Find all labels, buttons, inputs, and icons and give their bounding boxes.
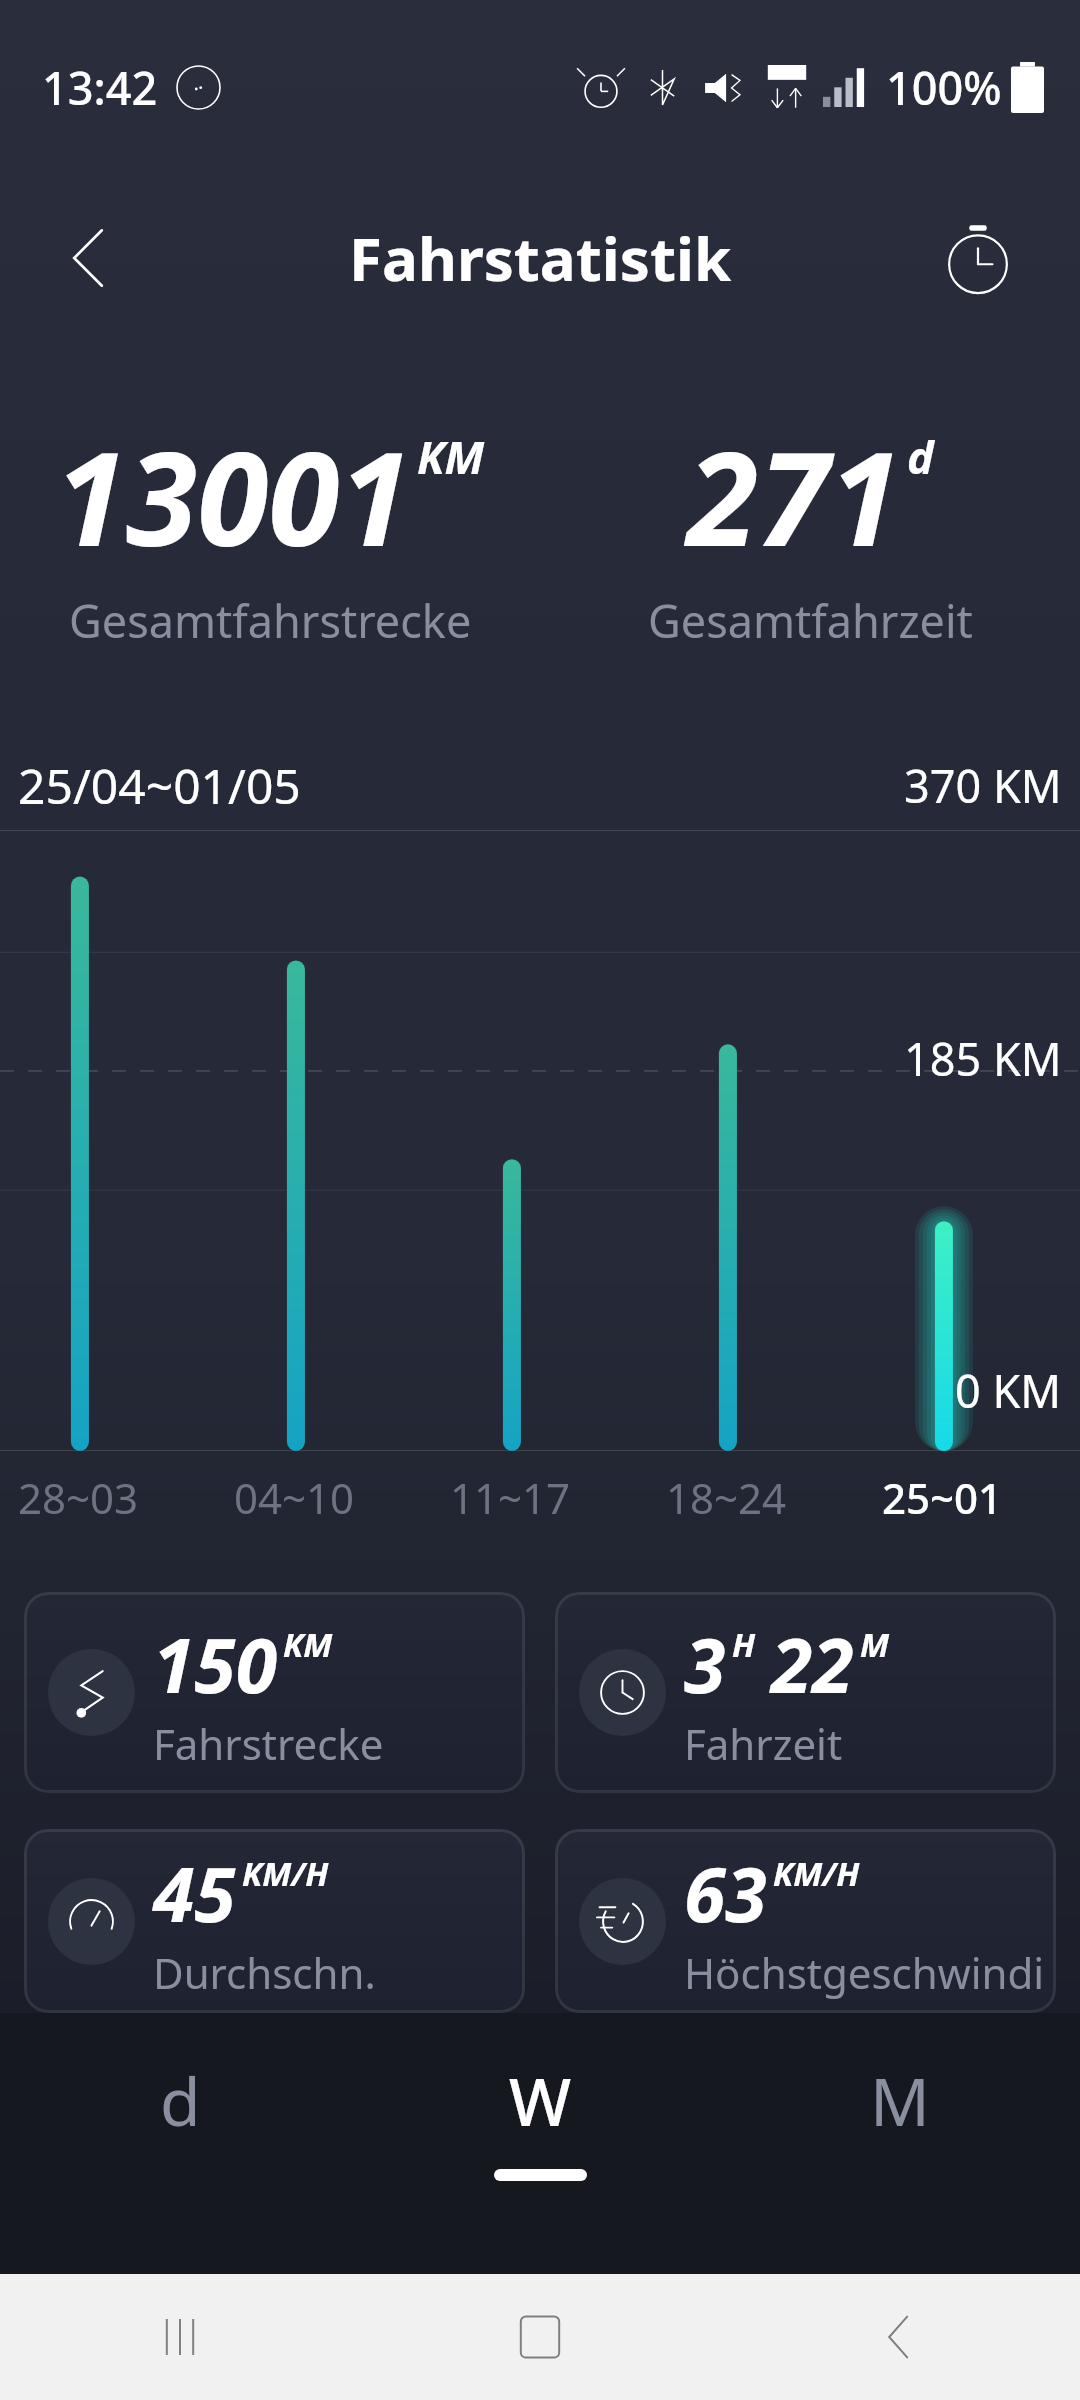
staticText: Fahrstrecke [153, 1715, 384, 1772]
staticText: Gesamtfahrstrecke [69, 590, 472, 651]
staticText: 271 [687, 408, 901, 584]
staticText: 3 [684, 1613, 726, 1715]
staticText: KM/H [242, 1851, 329, 1896]
staticText: Durchschn. [153, 1944, 376, 2001]
staticText: KM [417, 426, 485, 487]
button[interactable]: 45 [24, 1829, 525, 2013]
staticText: 63 [684, 1842, 767, 1944]
button[interactable]: Back [18, 186, 162, 330]
staticText: W [509, 2055, 572, 2145]
staticText: 13:42 [42, 57, 158, 118]
button[interactable]: 150 [24, 1592, 525, 1793]
staticText: d [907, 426, 934, 487]
staticText: 28~03 [18, 1469, 139, 1526]
staticText: 04~10 [234, 1469, 355, 1526]
staticText: 25/04~01/05 [18, 753, 301, 818]
button[interactable]: 63 [555, 1829, 1056, 2013]
staticText: 13001 [55, 408, 411, 584]
button[interactable]: M [720, 2013, 1080, 2274]
staticText: 0 KM [955, 1360, 1062, 1421]
staticText: Gesamtfahrzeit [648, 590, 973, 651]
staticText: 18~24 [666, 1469, 787, 1526]
staticText: KM/H [773, 1851, 860, 1896]
staticText: Fahrstatistik [349, 217, 732, 299]
staticText: d [160, 2055, 201, 2145]
button[interactable]: W [360, 2013, 720, 2274]
staticText: 45 [153, 1842, 236, 1944]
staticText: 185 KM [904, 1028, 1062, 1089]
staticText: KM [283, 1622, 333, 1667]
staticText: 11~17 [450, 1469, 571, 1526]
staticText: Fahrzeit [684, 1715, 843, 1772]
staticText: 150 [153, 1613, 277, 1715]
staticText: M [870, 2055, 930, 2145]
staticText: H [732, 1622, 756, 1667]
staticText: Höchstgeschwindigkeit [684, 1944, 1056, 2001]
staticText: 22 [771, 1613, 854, 1715]
staticText: 100% [886, 57, 1002, 118]
staticText: 25~01 [882, 1469, 1003, 1526]
button[interactable]: d [0, 2013, 360, 2274]
staticText: M [860, 1622, 890, 1667]
button[interactable]: History [906, 186, 1050, 330]
button[interactable]: 3 [555, 1592, 1056, 1793]
staticText: 370 KM [904, 755, 1062, 816]
